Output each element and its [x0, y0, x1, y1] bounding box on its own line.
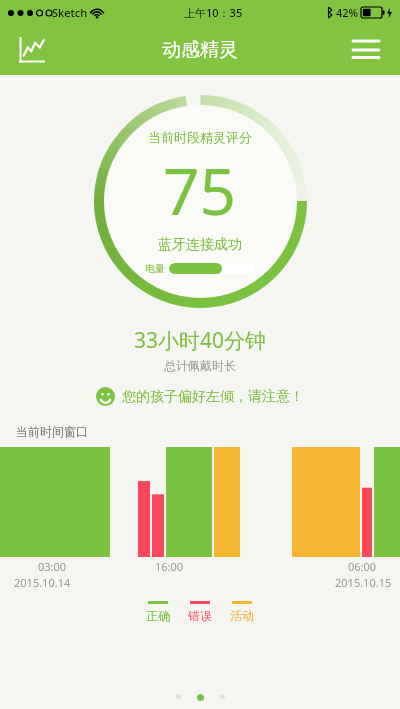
staticText: 2015.10.14: [14, 575, 71, 590]
button[interactable]: [220, 694, 225, 699]
staticText: Sketch: [52, 5, 88, 20]
button[interactable]: 您的孩子偏好左倾，请注意！: [0, 387, 400, 406]
staticText: 当前时段精灵评分: [148, 129, 252, 145]
staticText: 动感精灵: [162, 38, 238, 62]
staticText: 03:00: [38, 559, 67, 574]
staticText: 06:00: [348, 559, 377, 574]
staticText: 电量: [145, 262, 165, 275]
staticText: 2015.10.15: [335, 575, 392, 590]
button[interactable]: 正确: [146, 601, 170, 623]
button[interactable]: 错误: [188, 601, 212, 623]
staticText: 42%: [336, 5, 358, 20]
button[interactable]: Menu: [344, 28, 388, 72]
staticText: 当前时间窗口: [16, 424, 88, 439]
button[interactable]: [197, 694, 204, 701]
staticText: 上午10：35: [184, 5, 243, 20]
staticText: 蓝牙连接成功: [158, 236, 242, 254]
staticText: 75: [163, 147, 237, 234]
staticText: 错误: [188, 608, 212, 623]
staticText: 您的孩子偏好左倾，请注意！: [122, 388, 304, 406]
staticText: 33小时40分钟: [0, 326, 400, 355]
button[interactable]: [176, 694, 181, 699]
staticText: 16:00: [155, 559, 184, 574]
button[interactable]: 活动: [230, 601, 254, 623]
button[interactable]: Statistics: [12, 30, 52, 70]
staticText: 总计佩戴时长: [0, 358, 400, 373]
staticText: 正确: [146, 608, 170, 623]
staticText: 活动: [230, 608, 254, 623]
